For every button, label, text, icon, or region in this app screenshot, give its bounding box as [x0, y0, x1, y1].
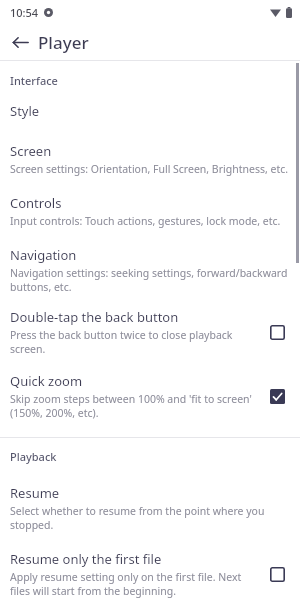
- staticText: Resume only the first file: [10, 550, 162, 568]
- button[interactable]: Double-tap the back button: [0, 294, 300, 356]
- staticText: Apply resume setting only on the first f…: [10, 570, 254, 598]
- button[interactable]: Quick zoom: [0, 356, 300, 420]
- staticText: Screen: [10, 142, 52, 160]
- staticText: Skip zoom steps between 100% and 'fit to…: [10, 392, 254, 420]
- staticText: Quick zoom: [10, 372, 83, 390]
- button[interactable]: Screen: [0, 120, 300, 176]
- button[interactable]: Back: [6, 28, 34, 56]
- staticText: Controls: [10, 194, 62, 212]
- staticText: 10:54: [10, 5, 39, 20]
- staticText: Navigation settings: seeking settings, f…: [10, 266, 290, 294]
- button[interactable]: Unchecked: [264, 319, 290, 345]
- button[interactable]: Style: [0, 88, 300, 120]
- button[interactable]: Checked: [264, 383, 290, 409]
- staticText: Playback: [10, 449, 284, 464]
- button[interactable]: Resume: [0, 464, 300, 532]
- button[interactable]: Controls: [0, 176, 300, 228]
- staticText: Interface: [10, 73, 284, 88]
- staticText: Screen settings: Orientation, Full Scree…: [10, 162, 289, 176]
- staticText: Navigation: [10, 246, 77, 264]
- staticText: Input controls: Touch actions, gestures,…: [10, 214, 281, 228]
- button[interactable]: Navigation: [0, 228, 300, 294]
- staticText: Resume: [10, 484, 60, 502]
- button[interactable]: Resume only the first file: [0, 532, 300, 598]
- staticText: Style: [10, 102, 40, 120]
- staticText: Press the back button twice to close pla…: [10, 328, 254, 356]
- staticText: Select whether to resume from the point …: [10, 504, 290, 532]
- staticText: Player: [38, 31, 89, 54]
- staticText: Double-tap the back button: [10, 308, 179, 326]
- button[interactable]: Unchecked: [264, 561, 290, 587]
